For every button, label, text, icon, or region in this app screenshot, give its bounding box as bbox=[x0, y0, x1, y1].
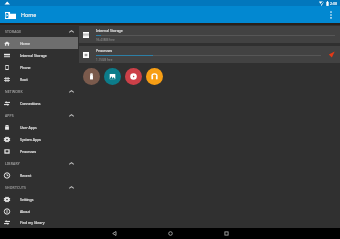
staticText: Recent bbox=[20, 173, 32, 178]
staticText: STORAGE bbox=[5, 29, 22, 34]
staticText: 1.15GB free bbox=[96, 58, 113, 62]
staticText: NETWORK bbox=[5, 89, 23, 94]
button[interactable]: Back bbox=[86, 228, 142, 239]
staticText: Settings bbox=[20, 197, 34, 202]
staticText: Home bbox=[20, 41, 30, 46]
button[interactable]: APPS bbox=[0, 109, 78, 121]
staticText: Internal Storage bbox=[96, 28, 123, 33]
staticText: Connections bbox=[20, 101, 41, 106]
button[interactable]: Processes bbox=[79, 46, 340, 63]
button[interactable]: Home bbox=[142, 228, 198, 239]
button[interactable]: Internal Storage bbox=[0, 49, 78, 61]
staticText: APPS bbox=[5, 113, 14, 118]
staticText: Processes bbox=[20, 149, 37, 154]
staticText: Internal Storage bbox=[20, 53, 47, 58]
staticText: Root bbox=[20, 77, 28, 82]
button[interactable]: Root bbox=[0, 73, 78, 85]
staticText: Phone bbox=[20, 65, 31, 70]
button[interactable]: Connections bbox=[0, 97, 78, 109]
staticText: Processes bbox=[96, 48, 113, 53]
button[interactable]: User Apps bbox=[0, 121, 78, 133]
staticText: 96.43MB free bbox=[96, 38, 115, 42]
button[interactable]: Images bbox=[104, 68, 121, 85]
staticText: User Apps bbox=[20, 125, 37, 130]
button[interactable]: LIBRARY bbox=[0, 157, 78, 169]
staticText: About bbox=[20, 209, 30, 214]
staticText: SHORTCUTS bbox=[5, 185, 27, 190]
button[interactable]: System Apps bbox=[0, 133, 78, 145]
button[interactable]: Settings bbox=[0, 193, 78, 205]
button[interactable]: Find my library bbox=[0, 217, 78, 228]
button[interactable]: Recent bbox=[0, 169, 78, 181]
staticText: LIBRARY bbox=[5, 161, 20, 166]
button[interactable]: Boost bbox=[326, 49, 337, 60]
button[interactable]: SHORTCUTS bbox=[0, 181, 78, 193]
staticText: System Apps bbox=[20, 137, 42, 142]
staticText: Find my library bbox=[20, 220, 45, 225]
button[interactable]: Videos bbox=[125, 68, 142, 85]
button[interactable]: STORAGE bbox=[0, 25, 78, 37]
button[interactable]: NETWORK bbox=[0, 85, 78, 97]
staticText: 2:08 bbox=[330, 1, 338, 6]
staticText: Home bbox=[21, 11, 37, 18]
button[interactable]: More options bbox=[322, 6, 340, 23]
button[interactable]: Processes bbox=[0, 145, 78, 157]
button[interactable]: Apps bbox=[83, 68, 100, 85]
button[interactable]: Home bbox=[0, 37, 78, 49]
button[interactable]: Recents bbox=[198, 228, 254, 239]
button[interactable]: About bbox=[0, 205, 78, 217]
button[interactable]: Phone bbox=[0, 61, 78, 73]
button[interactable]: Internal Storage bbox=[79, 26, 340, 43]
button[interactable]: Audio bbox=[146, 68, 163, 85]
